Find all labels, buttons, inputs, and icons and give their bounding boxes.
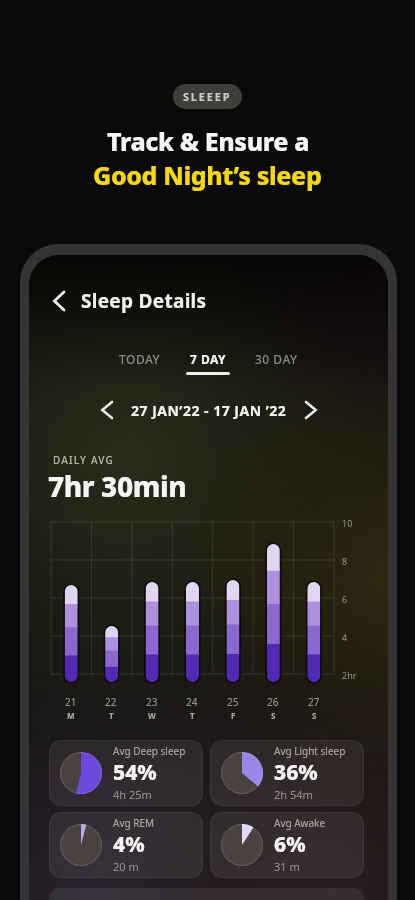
button[interactable]: Avg Light sleep [210, 740, 364, 806]
button[interactable]: Avg REM [49, 812, 203, 878]
staticText: Sleep Details [81, 288, 207, 314]
staticText: 54% [113, 758, 157, 787]
staticText: 26 [267, 695, 279, 709]
staticText: DAILY AVG [53, 453, 114, 467]
button[interactable]: Avg Deep sleep [49, 740, 203, 806]
staticText: 21 [65, 695, 77, 709]
staticText: Avg Awake [274, 816, 326, 830]
staticText: T [190, 710, 195, 721]
staticText: 25 [227, 695, 239, 709]
button[interactable]: SLEEEP [173, 84, 242, 109]
staticText: SLEEEP [183, 89, 232, 104]
button[interactable]: Sleep Details [53, 288, 207, 314]
button[interactable]: Avg Awake [210, 812, 364, 878]
staticText: 2hr [342, 669, 357, 681]
staticText: 6% [274, 830, 306, 859]
staticText: 4 [342, 631, 348, 643]
button[interactable] [303, 399, 320, 421]
staticText: 24 [186, 695, 198, 709]
staticText: Track & Ensure a [107, 124, 309, 158]
button[interactable]: TODAY [119, 351, 161, 367]
staticText: 6 [342, 593, 348, 605]
staticText: 7 DAY [190, 351, 227, 367]
staticText: 30 DAY [255, 351, 298, 367]
staticText: 31 m [274, 859, 300, 874]
staticText: 23 [146, 695, 158, 709]
button[interactable] [98, 399, 115, 421]
staticText: 4% [113, 830, 145, 859]
staticText: T [109, 710, 114, 721]
staticText: 27 JAN’22 - 17 JAN ’22 [131, 401, 287, 420]
staticText: F [231, 710, 236, 721]
staticText: M [67, 710, 75, 721]
staticText: TODAY [119, 351, 161, 367]
staticText: S [312, 710, 317, 721]
staticText: Avg Deep sleep [113, 744, 186, 758]
staticText: 2h 54m [274, 787, 313, 802]
staticText: S [271, 710, 276, 721]
staticText: 10 [342, 517, 353, 529]
staticText: Avg Light sleep [274, 744, 346, 758]
staticText: 22 [105, 695, 117, 709]
staticText: 27 [308, 695, 320, 709]
staticText: 20 m [113, 859, 139, 874]
staticText: 4h 25m [113, 787, 152, 802]
staticText: Good Night’s sleep [93, 158, 322, 192]
staticText: Avg REM [113, 816, 155, 830]
button[interactable]: 7 DAY [186, 351, 230, 375]
staticText: 7hr 30min [48, 467, 187, 505]
staticText: W [148, 710, 156, 721]
staticText: 8 [342, 555, 348, 567]
button[interactable]: 30 DAY [255, 351, 298, 367]
staticText: 36% [274, 758, 318, 787]
